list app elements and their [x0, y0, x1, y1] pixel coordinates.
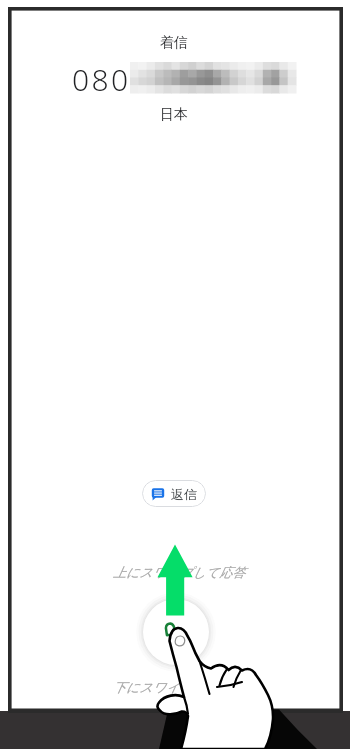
staticText: 080 [72, 59, 131, 100]
staticText: 返信 [171, 486, 197, 502]
staticText: 着信 [160, 34, 188, 52]
button[interactable]: 返信 [142, 480, 206, 507]
button[interactable] [143, 599, 209, 665]
staticText: 下にスワイプして拒否 [113, 679, 246, 695]
staticText: 日本 [160, 106, 188, 124]
staticText: 上にスワイプして応答 [113, 564, 246, 580]
